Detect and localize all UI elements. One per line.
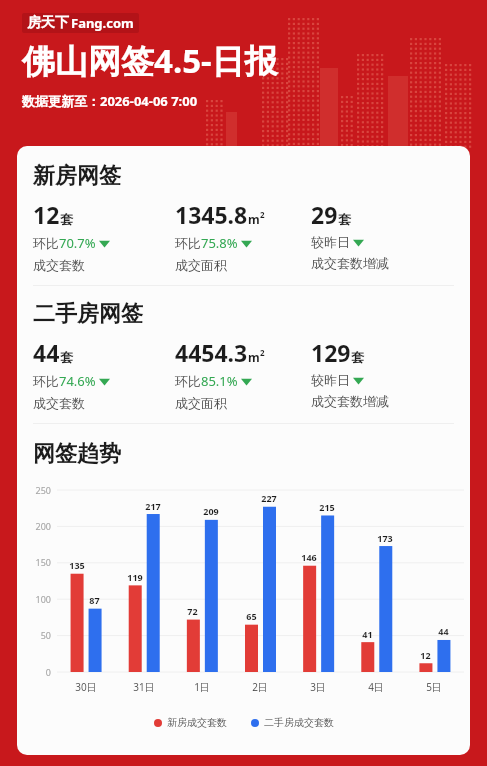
- staticText: 29: [311, 199, 338, 230]
- staticText: 套: [60, 349, 73, 365]
- button[interactable]: 二手房成交套数: [251, 716, 334, 729]
- staticText: 217: [145, 500, 161, 512]
- staticText: 套: [338, 211, 351, 227]
- staticText: 房天下: [27, 14, 69, 32]
- staticText: 较昨日: [311, 372, 350, 388]
- staticText: 75.8%: [201, 234, 238, 252]
- staticText: 5日: [426, 680, 442, 694]
- staticText: 209: [203, 505, 219, 517]
- staticText: 85.1%: [201, 372, 238, 390]
- button[interactable]: 250: [17, 480, 470, 712]
- staticText: 3日: [310, 680, 326, 694]
- other: 下降: [353, 376, 364, 385]
- button[interactable]: 12: [33, 199, 175, 273]
- staticText: 0: [45, 666, 51, 678]
- staticText: 250: [35, 484, 51, 496]
- staticText: 成交套数增减: [311, 393, 389, 409]
- staticText: 网签趋势: [33, 440, 121, 468]
- other: 下降: [241, 239, 252, 248]
- staticText: 套: [351, 349, 364, 365]
- staticText: 4日: [368, 680, 384, 694]
- button[interactable]: 新房成交套数: [154, 716, 227, 729]
- staticText: 成交套数: [33, 395, 85, 411]
- staticText: 数据更新至：2026-04-06 7:00: [22, 92, 198, 110]
- staticText: 129: [311, 337, 351, 368]
- staticText: 227: [261, 492, 277, 504]
- staticText: 119: [127, 571, 143, 583]
- staticText: 41: [362, 628, 373, 640]
- staticText: 2日: [252, 680, 268, 694]
- staticText: 2: [260, 347, 265, 358]
- staticText: 新房成交套数: [167, 716, 227, 729]
- button[interactable]: 29: [311, 199, 451, 271]
- staticText: 44: [33, 337, 60, 368]
- staticText: 50: [40, 629, 51, 641]
- staticText: m: [248, 349, 260, 365]
- staticText: 12: [33, 199, 60, 230]
- staticText: 成交面积: [175, 395, 227, 411]
- staticText: 新房网签: [33, 162, 121, 190]
- staticText: 1日: [194, 680, 210, 694]
- staticText: 146: [301, 551, 317, 563]
- staticText: 200: [35, 520, 51, 532]
- staticText: 佛山网签4.5-日报: [22, 38, 278, 83]
- button[interactable]: 4454.3: [175, 337, 311, 411]
- button[interactable]: 44: [33, 337, 175, 411]
- staticText: 成交套数: [33, 257, 85, 273]
- button[interactable]: 129: [311, 337, 451, 409]
- staticText: 87: [89, 594, 100, 606]
- staticText: 套: [60, 211, 73, 227]
- staticText: 12: [420, 649, 431, 661]
- staticText: Fang.com: [71, 14, 134, 32]
- staticText: 31日: [133, 680, 155, 694]
- staticText: 较昨日: [311, 234, 350, 250]
- staticText: 成交面积: [175, 257, 227, 273]
- other: 下降: [99, 377, 110, 386]
- other: 下降: [353, 238, 364, 247]
- staticText: 成交套数增减: [311, 255, 389, 271]
- staticText: 二手房成交套数: [264, 716, 334, 729]
- button[interactable]: 房天下: [22, 13, 139, 33]
- staticText: 135: [69, 559, 85, 571]
- staticText: 2: [260, 209, 265, 220]
- other: 下降: [241, 377, 252, 386]
- button[interactable]: 1345.8: [175, 199, 311, 273]
- staticText: 二手房网签: [33, 300, 143, 328]
- other: 下降: [99, 239, 110, 248]
- staticText: 72: [187, 605, 198, 617]
- staticText: 1345.8: [175, 199, 248, 230]
- staticText: 100: [35, 593, 51, 605]
- staticText: 70.7%: [59, 234, 96, 252]
- staticText: 环比: [175, 235, 201, 251]
- staticText: 环比: [33, 373, 59, 389]
- staticText: 150: [35, 556, 51, 568]
- staticText: 4454.3: [175, 337, 248, 368]
- staticText: 环比: [175, 373, 201, 389]
- staticText: m: [248, 211, 260, 227]
- staticText: 173: [377, 532, 393, 544]
- staticText: 30日: [75, 680, 97, 694]
- staticText: 74.6%: [59, 372, 96, 390]
- staticText: 44: [438, 625, 449, 637]
- staticText: 65: [246, 610, 257, 622]
- staticText: 环比: [33, 235, 59, 251]
- staticText: 215: [319, 501, 335, 513]
